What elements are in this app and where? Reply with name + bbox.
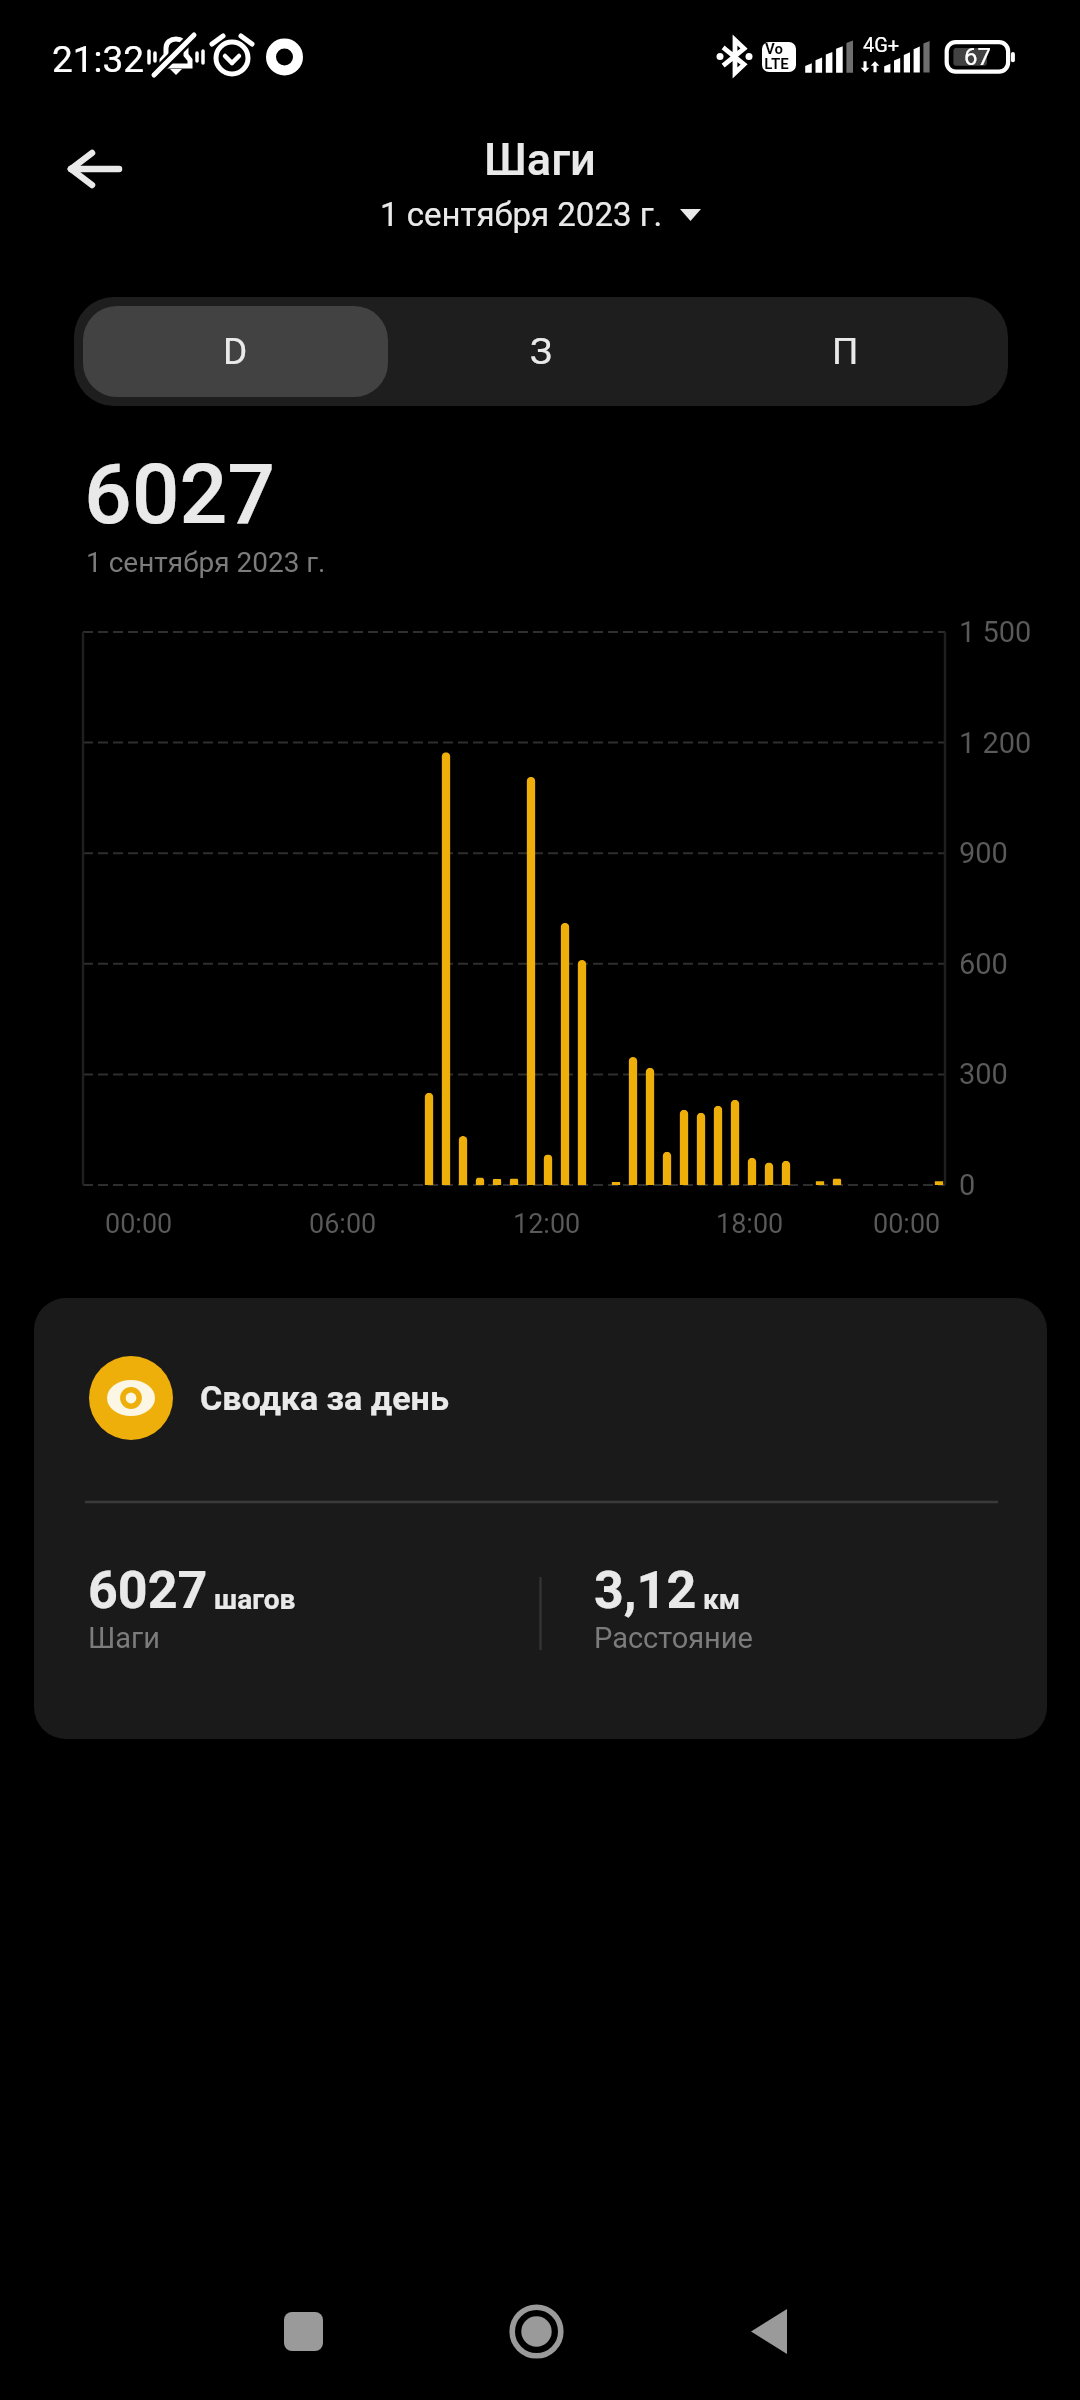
button[interactable]: 1 сентября 2023 г.	[376, 193, 705, 236]
button[interactable]: D	[83, 306, 388, 397]
staticText: шагов	[214, 1583, 296, 1616]
button[interactable]: З	[388, 306, 693, 397]
staticText: 00:00	[105, 1208, 173, 1240]
staticText: 1 200	[959, 726, 1032, 760]
staticText: 06:00	[309, 1208, 377, 1240]
staticText: 6027	[84, 445, 275, 543]
staticText: 00:00	[873, 1208, 941, 1240]
staticText: км	[703, 1583, 741, 1616]
staticText: 18:00	[716, 1208, 784, 1240]
staticText: 1 500	[959, 615, 1032, 649]
staticText: 1 сентября 2023 г.	[380, 195, 663, 234]
staticText: 12:00	[513, 1208, 581, 1240]
staticText: D	[223, 330, 248, 373]
staticText: Расстояние	[594, 1621, 753, 1655]
staticText: 67	[964, 43, 991, 71]
staticText: LTE	[764, 55, 789, 73]
button[interactable]: Back	[704, 2266, 834, 2396]
button[interactable]: Recents	[238, 2266, 368, 2396]
staticText: 900	[959, 836, 1008, 870]
staticText: Vo	[765, 40, 783, 58]
staticText: 600	[959, 947, 1008, 981]
staticText: Сводка за день	[200, 1378, 449, 1418]
staticText: 21:32	[52, 38, 145, 81]
staticText: 4G+	[863, 33, 900, 56]
staticText: Шаги	[484, 133, 596, 186]
staticText: 300	[959, 1057, 1008, 1091]
button[interactable]: П	[693, 306, 998, 397]
staticText: 3,12	[594, 1560, 697, 1621]
staticText: З	[530, 330, 552, 373]
button[interactable]: Home	[471, 2266, 601, 2396]
staticText: 6027	[88, 1560, 208, 1621]
staticText: П	[832, 330, 859, 373]
button[interactable]: Back	[47, 121, 143, 217]
staticText: 1 сентября 2023 г.	[86, 546, 326, 579]
button[interactable]: Сводка за день	[34, 1298, 1047, 1739]
staticText: Шаги	[88, 1621, 160, 1655]
staticText: 0	[959, 1168, 976, 1202]
